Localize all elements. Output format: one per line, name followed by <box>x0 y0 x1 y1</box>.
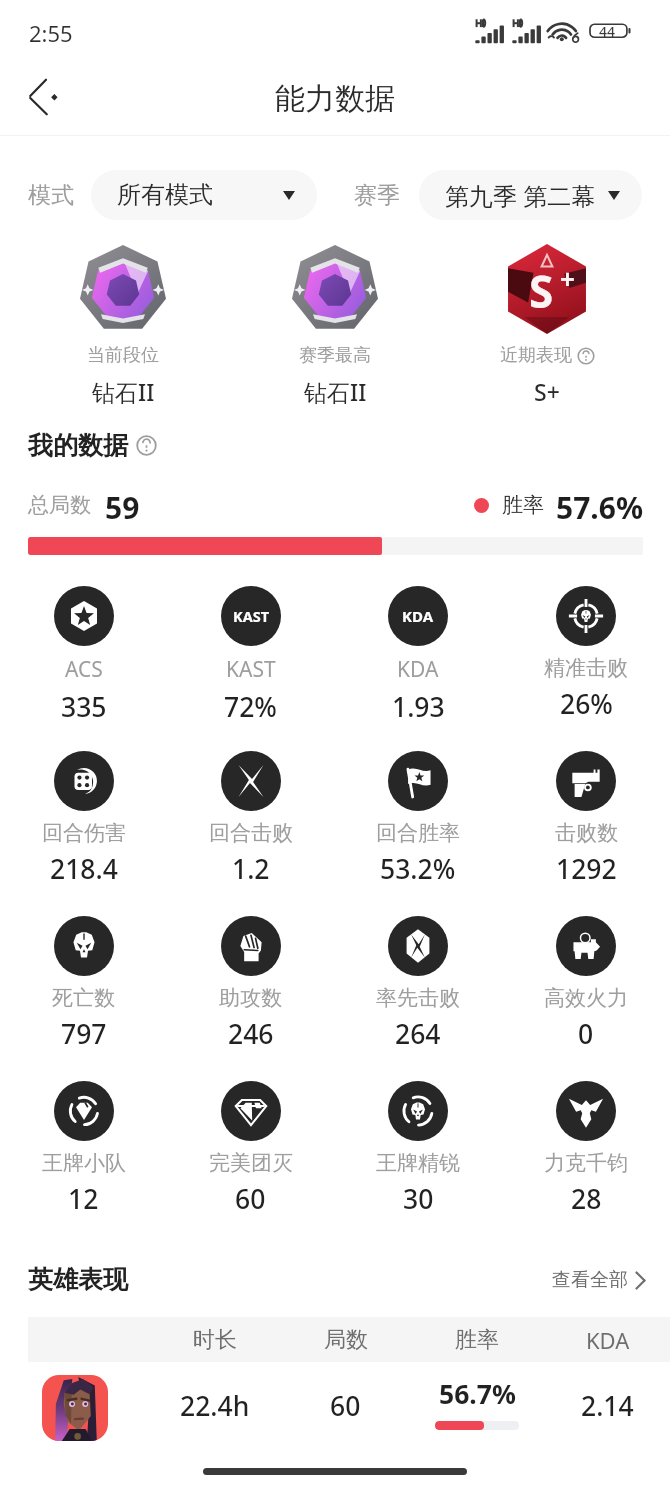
staticText: 赛季最高 <box>299 344 371 367</box>
staticText: 57.6% <box>556 487 643 521</box>
button[interactable]: 查看全部 <box>552 1268 646 1292</box>
staticText: 2.14 <box>581 1388 634 1424</box>
staticText: 30 <box>403 1181 434 1217</box>
button[interactable]: 王牌精锐 <box>334 1081 502 1217</box>
staticText: 60 <box>235 1181 266 1217</box>
staticText: 王牌小队 <box>42 1150 126 1176</box>
staticText: 44 <box>599 22 616 41</box>
staticText: 回合胜率 <box>376 820 460 846</box>
button[interactable]: 完美团灭 <box>167 1081 334 1217</box>
staticText: 模式 <box>28 181 74 210</box>
staticText: 精准击败 <box>544 655 628 681</box>
staticText: S <box>529 261 554 321</box>
staticText: 回合击败 <box>209 820 293 846</box>
staticText: 能力数据 <box>275 80 395 118</box>
staticText: 完美团灭 <box>209 1150 293 1176</box>
button[interactable]: 击败数 <box>502 751 670 887</box>
staticText: 我的数据 <box>28 430 128 461</box>
staticText: 26% <box>560 686 613 722</box>
button[interactable]: 力克千钧 <box>502 1081 670 1217</box>
staticText: 1.93 <box>392 689 445 725</box>
staticText: 击败数 <box>555 820 618 846</box>
staticText: 助攻数 <box>219 985 282 1011</box>
staticText: + <box>560 261 575 296</box>
button[interactable]: 回合击败 <box>167 751 334 887</box>
button[interactable]: 精准击败 <box>502 586 670 722</box>
button[interactable]: 22.4h <box>0 1358 670 1454</box>
button[interactable]: 率先击败 <box>334 916 502 1052</box>
staticText: 胜率 <box>455 1326 499 1354</box>
staticText: 59 <box>105 487 140 521</box>
staticText: 1.2 <box>232 851 270 887</box>
staticText: 钻石II <box>304 376 367 407</box>
staticText: 28 <box>571 1181 602 1217</box>
staticText: 56.7% <box>439 1376 516 1412</box>
button[interactable]: 回合胜率 <box>334 751 502 887</box>
staticText: 英雄表现 <box>28 1264 128 1295</box>
staticText: 72% <box>224 689 277 725</box>
staticText: 60 <box>330 1388 361 1424</box>
staticText: 回合伤害 <box>42 820 126 846</box>
button[interactable]: KAST <box>167 586 334 725</box>
staticText: 力克千钧 <box>544 1150 628 1176</box>
staticText: 797 <box>61 1016 107 1052</box>
staticText: 53.2% <box>380 851 456 887</box>
staticText: 当前段位 <box>87 344 159 367</box>
staticText: KAST <box>226 655 276 684</box>
staticText: KDA <box>397 655 439 684</box>
button[interactable]: Back <box>16 67 76 127</box>
staticText: 第九季 第二幕 <box>445 179 596 212</box>
staticText: KDA <box>402 606 434 626</box>
button[interactable]: S <box>441 244 653 407</box>
staticText: 率先击败 <box>376 985 460 1011</box>
button[interactable]: ACS <box>0 586 167 725</box>
staticText: ACS <box>65 655 103 684</box>
staticText: 死亡数 <box>52 985 115 1011</box>
staticText: 218.4 <box>50 851 118 887</box>
staticText: 查看全部 <box>552 1268 628 1292</box>
staticText: 所有模式 <box>117 180 213 210</box>
button[interactable]: 回合伤害 <box>0 751 167 887</box>
staticText: 2:55 <box>29 18 73 48</box>
button[interactable]: 王牌小队 <box>0 1081 167 1217</box>
staticText: 钻石II <box>92 376 155 407</box>
staticText: KAST <box>233 606 270 626</box>
staticText: 近期表现 <box>500 344 572 367</box>
button[interactable]: 当前段位 <box>17 244 229 407</box>
staticText: 264 <box>395 1016 441 1052</box>
staticText: KDA <box>586 1325 630 1355</box>
button[interactable]: 所有模式 <box>91 170 317 220</box>
staticText: 时长 <box>193 1326 237 1354</box>
button[interactable]: 第九季 第二幕 <box>419 170 642 220</box>
button[interactable]: KDA <box>334 586 502 725</box>
staticText: 王牌精锐 <box>376 1150 460 1176</box>
staticText: 胜率 <box>502 492 544 518</box>
staticText: 335 <box>61 689 107 725</box>
staticText: 高效火力 <box>544 985 628 1011</box>
staticText: 22.4h <box>180 1388 250 1424</box>
staticText: 赛季 <box>354 181 400 210</box>
staticText: 局数 <box>324 1326 368 1354</box>
staticText: 1292 <box>556 851 617 887</box>
staticText: 总局数 <box>28 492 91 518</box>
button[interactable]: 赛季最高 <box>229 244 441 407</box>
button[interactable]: 死亡数 <box>0 916 167 1052</box>
staticText: 0 <box>578 1016 594 1052</box>
staticText: S+ <box>534 376 560 407</box>
staticText: 12 <box>68 1181 99 1217</box>
staticText: 246 <box>228 1016 274 1052</box>
button[interactable]: 助攻数 <box>167 916 334 1052</box>
button[interactable]: 高效火力 <box>502 916 670 1052</box>
